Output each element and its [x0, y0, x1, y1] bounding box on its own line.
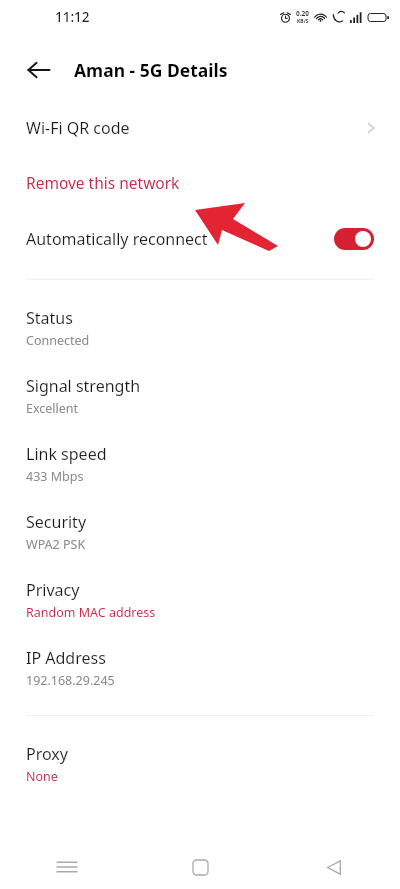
staticText: Excellent	[26, 400, 79, 417]
staticText: 192.168.29.245	[26, 672, 115, 689]
button[interactable]: Link speed	[0, 443, 400, 485]
button[interactable]: Recent apps	[0, 845, 134, 889]
staticText: 433 Mbps	[26, 468, 84, 485]
staticText: Privacy	[26, 579, 80, 601]
staticText: WPA2 PSK	[26, 536, 86, 553]
button[interactable]: Back	[267, 845, 400, 889]
button[interactable]: Remove this network	[0, 166, 400, 198]
staticText: Status	[26, 307, 73, 329]
staticText: 0.20	[296, 9, 309, 18]
staticText: KB/S	[297, 18, 309, 25]
staticText: Connected	[26, 332, 90, 349]
staticText: Aman - 5G Details	[74, 58, 228, 82]
staticText: Link speed	[26, 443, 107, 465]
button[interactable]: Privacy	[0, 579, 400, 621]
staticText: None	[26, 768, 58, 785]
button[interactable]: Security	[0, 511, 400, 553]
button[interactable]: Signal strength	[0, 375, 400, 417]
button[interactable]: Automatically reconnect	[0, 218, 400, 260]
staticText: Proxy	[26, 743, 68, 765]
staticText: 11:12	[55, 8, 90, 26]
button[interactable]: Proxy	[0, 743, 400, 785]
button[interactable]: Back	[22, 53, 56, 87]
staticText: Signal strength	[26, 375, 141, 397]
staticText: IP Address	[26, 647, 106, 669]
staticText: Random MAC address	[26, 604, 156, 621]
button[interactable]: IP Address	[0, 647, 400, 689]
button[interactable]: Automatically reconnect, on	[334, 228, 374, 250]
staticText: Remove this network	[26, 172, 180, 193]
button[interactable]: Home	[134, 845, 267, 889]
staticText: Wi-Fi QR code	[26, 117, 130, 139]
staticText: Automatically reconnect	[26, 228, 208, 250]
button[interactable]: Wi-Fi QR code	[0, 106, 400, 150]
staticText: Security	[26, 511, 87, 533]
button[interactable]: Status	[0, 307, 400, 349]
